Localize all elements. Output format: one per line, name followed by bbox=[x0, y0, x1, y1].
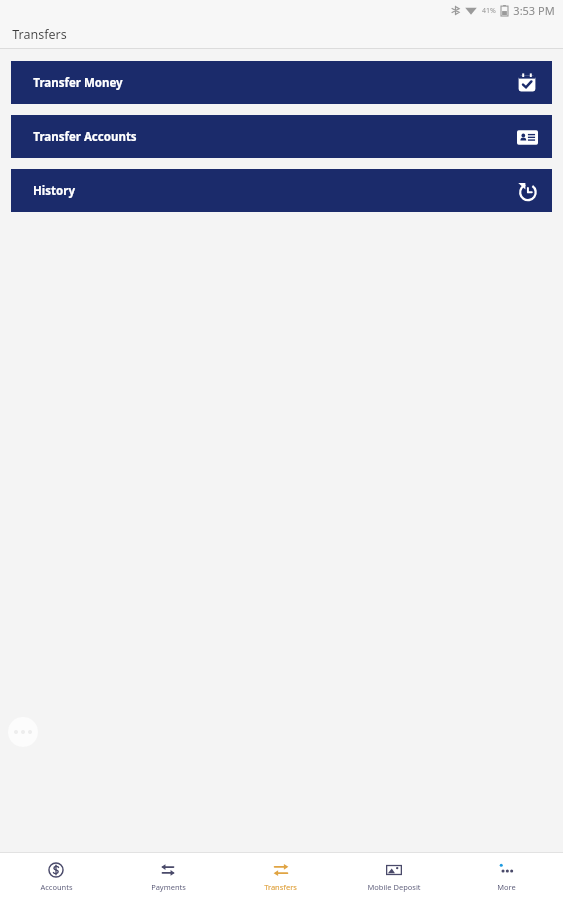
staticText: More bbox=[497, 882, 516, 892]
staticText: 3:53 PM bbox=[513, 3, 555, 18]
button[interactable]: Mobile Deposit bbox=[337, 853, 450, 900]
button[interactable]: Transfer Money bbox=[11, 61, 552, 104]
staticText: 41% bbox=[482, 6, 496, 16]
button[interactable]: Transfers bbox=[224, 853, 337, 900]
staticText: History bbox=[33, 183, 75, 199]
staticText: Transfer Money bbox=[33, 75, 123, 91]
staticText: Payments bbox=[151, 882, 186, 892]
button[interactable]: More options bbox=[8, 717, 38, 747]
staticText: Transfers bbox=[264, 882, 297, 892]
staticText: Transfer Accounts bbox=[33, 129, 137, 145]
button[interactable]: Accounts bbox=[0, 853, 112, 900]
button[interactable]: More bbox=[450, 853, 563, 900]
button[interactable]: Transfer Accounts bbox=[11, 115, 552, 158]
staticText: Accounts bbox=[40, 882, 73, 892]
button[interactable]: History bbox=[11, 169, 552, 212]
staticText: Transfers bbox=[12, 26, 67, 43]
button[interactable]: Payments bbox=[112, 853, 224, 900]
staticText: Mobile Deposit bbox=[367, 882, 421, 892]
